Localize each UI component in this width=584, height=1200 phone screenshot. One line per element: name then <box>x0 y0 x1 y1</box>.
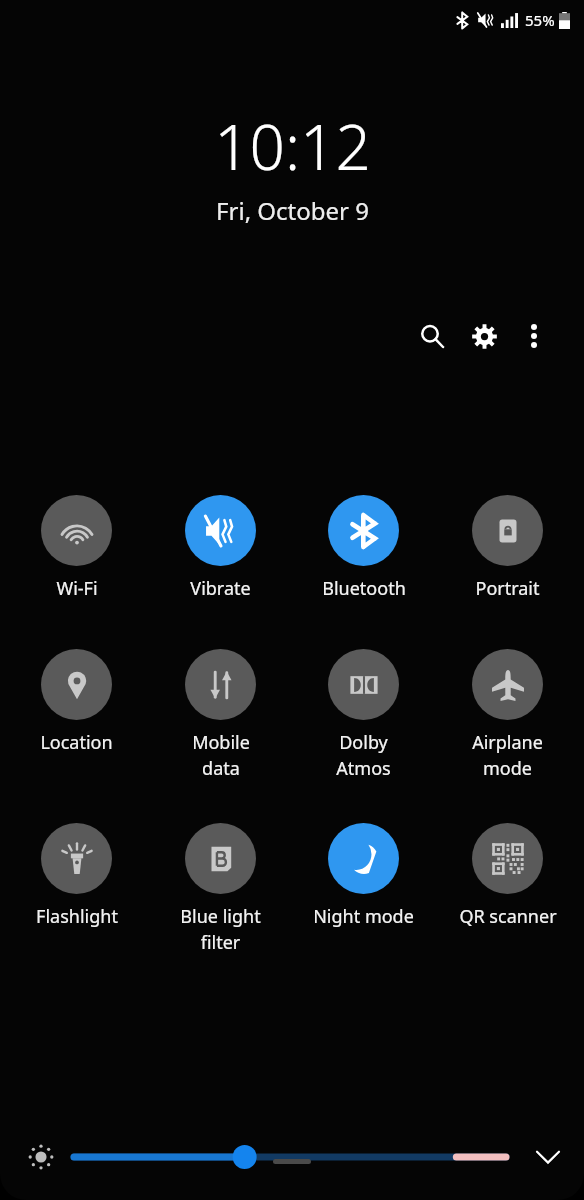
staticText: Portrait <box>475 576 540 601</box>
staticText: Vibrate <box>190 576 251 601</box>
button[interactable]: QR scanner <box>441 823 574 929</box>
button[interactable]: Vibrate <box>154 495 287 601</box>
staticText: Location <box>40 730 113 755</box>
button[interactable]: Mobile data <box>154 649 287 780</box>
button[interactable]: Bluetooth <box>297 495 430 601</box>
button[interactable]: Expand <box>524 1133 572 1181</box>
staticText: Airplane mode <box>472 730 543 780</box>
button[interactable]: Settings <box>458 310 510 362</box>
staticText: Wi-Fi <box>56 576 98 601</box>
staticText: 10:12 <box>214 104 371 188</box>
staticText: 55% <box>525 10 555 30</box>
staticText: Bluetooth <box>322 576 406 601</box>
staticText: QR scanner <box>459 904 557 929</box>
staticText: Fri, October 9 <box>216 194 369 227</box>
staticText: Flashlight <box>36 904 118 929</box>
button[interactable]: Blue light filter <box>154 823 287 954</box>
button[interactable] <box>273 1159 311 1164</box>
button[interactable]: Night mode <box>297 823 430 929</box>
button[interactable]: Portrait <box>441 495 574 601</box>
staticText: Mobile data <box>192 730 250 780</box>
button[interactable]: Wi-Fi <box>10 495 143 601</box>
staticText: Dolby Atmos <box>336 730 391 780</box>
staticText: Night mode <box>313 904 414 929</box>
button[interactable]: Dolby Atmos <box>297 649 430 780</box>
button[interactable]: Flashlight <box>10 823 143 929</box>
staticText: Blue light filter <box>180 904 261 954</box>
other: Brightness <box>26 1142 56 1172</box>
button[interactable]: Search <box>406 310 458 362</box>
button[interactable]: Location <box>10 649 143 755</box>
button[interactable] <box>74 1142 506 1172</box>
button[interactable]: Airplane mode <box>441 649 574 780</box>
button[interactable]: More options <box>510 312 558 360</box>
